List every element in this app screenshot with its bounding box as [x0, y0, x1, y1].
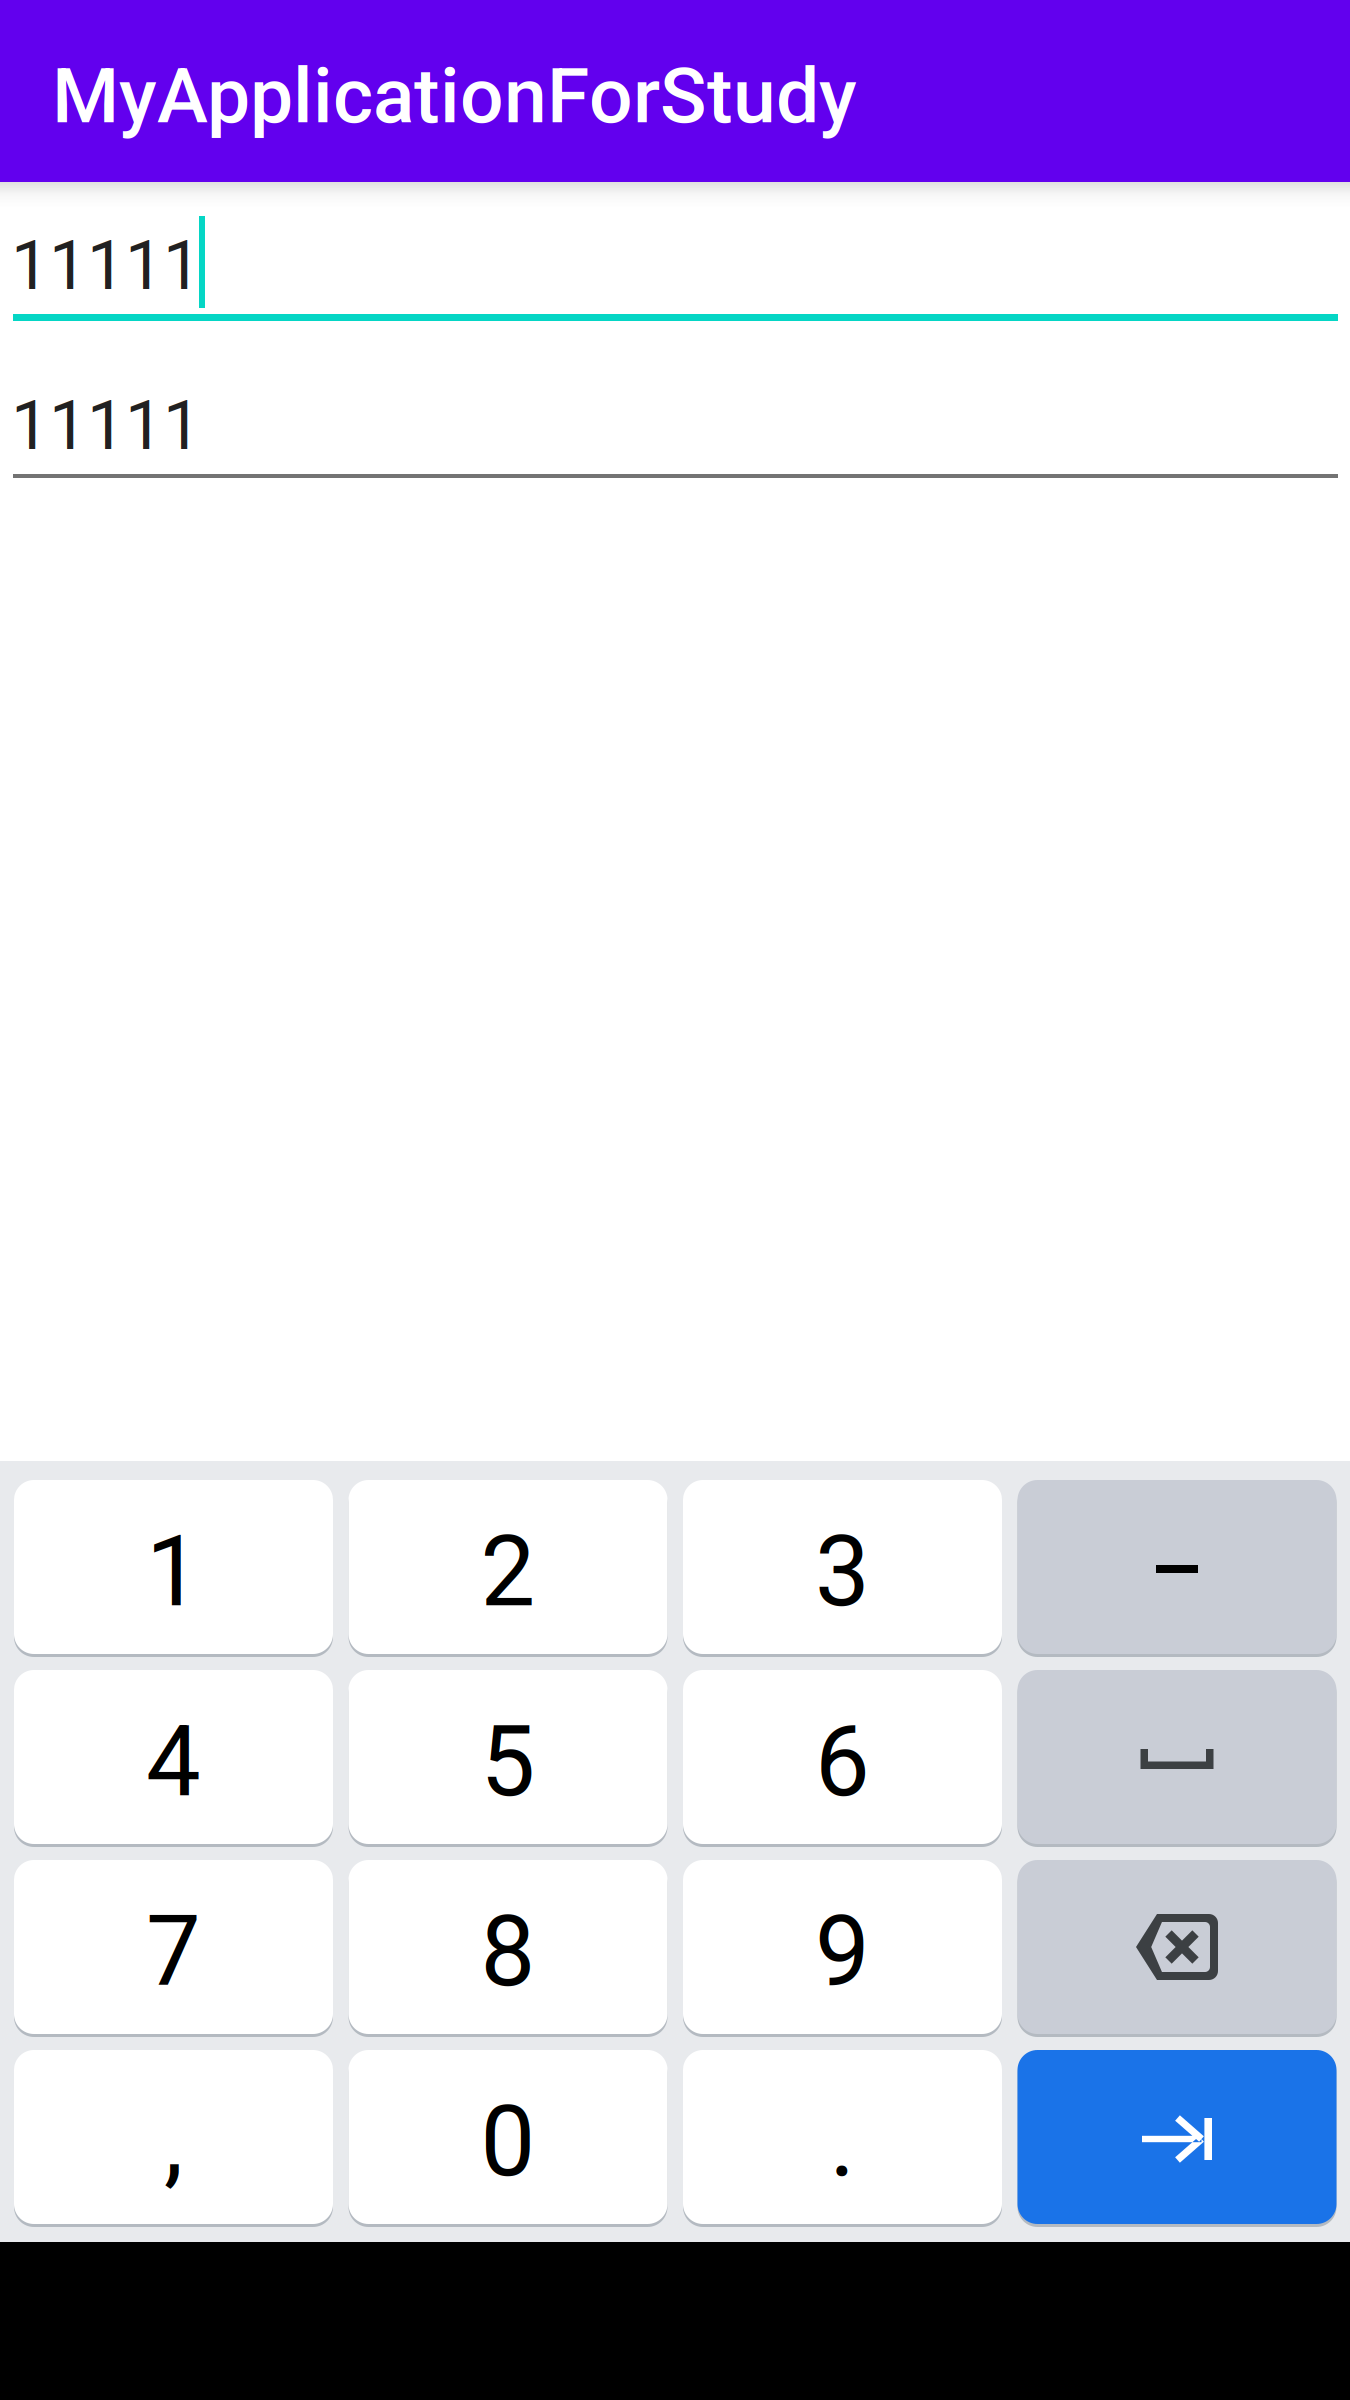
staticText: 4	[146, 1705, 201, 1819]
button[interactable]: Comma	[14, 2050, 333, 2224]
staticText: ,	[164, 2085, 183, 2199]
staticText: 7	[146, 1895, 201, 2009]
button[interactable]: 4	[14, 1670, 333, 1844]
button[interactable]: 8	[348, 1860, 667, 2034]
staticText: 6	[815, 1705, 870, 1819]
button[interactable]: 9	[683, 1860, 1002, 2034]
staticText: MyApplicationForStudy	[52, 51, 857, 141]
staticText: 1	[146, 1515, 201, 1629]
staticText: 2	[480, 1515, 535, 1629]
button[interactable]: Backspace	[1017, 1860, 1336, 2034]
button[interactable]: 5	[348, 1670, 667, 1844]
button[interactable]: Period	[683, 2050, 1002, 2224]
button[interactable]: Space	[1017, 1670, 1336, 1844]
staticText: 0	[480, 2085, 535, 2199]
button[interactable]: 11111	[0, 182, 1350, 332]
button[interactable]: 11111	[0, 346, 1350, 492]
staticText: 5	[480, 1705, 535, 1819]
button[interactable]: 6	[683, 1670, 1002, 1844]
button[interactable]: 1	[14, 1480, 333, 1654]
staticText: 11111	[11, 386, 201, 466]
staticText: 3	[815, 1515, 870, 1629]
button[interactable]: 7	[14, 1860, 333, 2034]
staticText: .	[829, 2085, 855, 2199]
staticText: 11111	[11, 226, 201, 306]
button[interactable]: Tab	[1017, 2050, 1336, 2224]
button[interactable]: 2	[348, 1480, 667, 1654]
staticText: 8	[480, 1895, 535, 2009]
staticText: 9	[815, 1895, 870, 2009]
button[interactable]: 0	[348, 2050, 667, 2224]
button[interactable]: 3	[683, 1480, 1002, 1654]
button[interactable]: Minus	[1017, 1480, 1336, 1654]
